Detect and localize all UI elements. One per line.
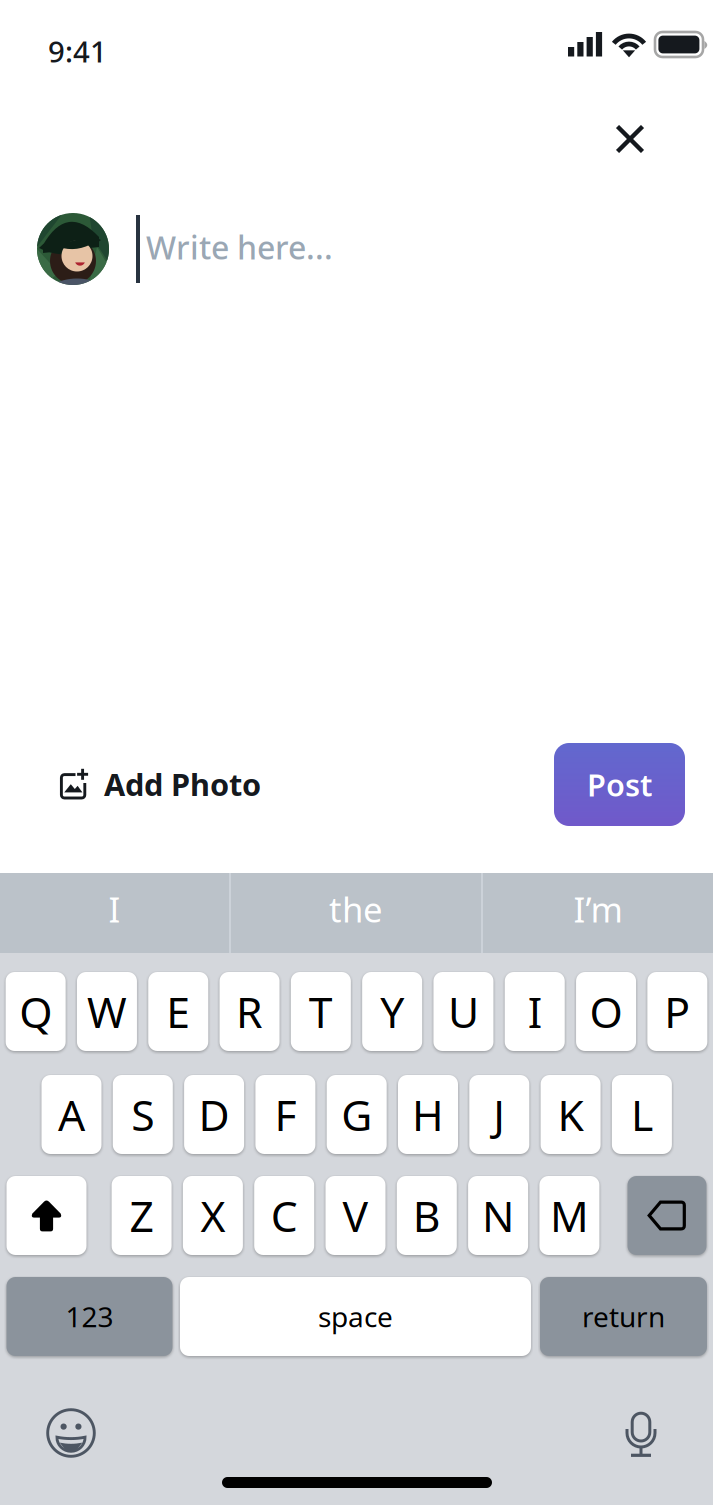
staticText: return: [582, 1298, 665, 1335]
staticText: Add Photo: [104, 764, 261, 804]
staticText: Y: [380, 983, 404, 1040]
button[interactable]: Q: [6, 972, 66, 1051]
staticText: Post: [587, 764, 652, 805]
button[interactable]: the: [231, 873, 481, 953]
staticText: N: [482, 1187, 514, 1244]
button[interactable]: 123: [6, 1277, 172, 1356]
button[interactable]: I: [505, 972, 565, 1051]
staticText: J: [493, 1086, 505, 1143]
button[interactable]: space: [180, 1277, 531, 1356]
button[interactable]: Delete: [627, 1176, 706, 1255]
staticText: B: [413, 1187, 441, 1244]
button[interactable]: U: [433, 972, 493, 1051]
staticText: the: [329, 886, 383, 932]
button[interactable]: Shift: [6, 1176, 86, 1255]
button[interactable]: M: [539, 1176, 599, 1255]
button[interactable]: Y: [362, 972, 422, 1051]
staticText: E: [166, 983, 190, 1040]
button[interactable]: G: [327, 1075, 387, 1154]
staticText: M: [550, 1187, 589, 1244]
staticText: I: [528, 983, 542, 1040]
button[interactable]: Z: [112, 1176, 172, 1255]
button[interactable]: T: [291, 972, 351, 1051]
button[interactable]: S: [113, 1075, 173, 1154]
staticText: H: [412, 1086, 444, 1143]
button[interactable]: I: [0, 873, 229, 953]
button[interactable]: N: [468, 1176, 528, 1255]
button[interactable]: F: [255, 1075, 315, 1154]
staticText: V: [342, 1187, 368, 1244]
button[interactable]: W: [77, 972, 137, 1051]
staticText: D: [199, 1086, 230, 1143]
staticText: Q: [19, 983, 52, 1040]
staticText: 9:41: [48, 31, 107, 70]
button[interactable]: Emoji keyboard: [30, 1398, 112, 1468]
staticText: A: [58, 1086, 85, 1143]
button[interactable]: L: [612, 1075, 672, 1154]
staticText: R: [236, 983, 263, 1040]
button[interactable]: D: [184, 1075, 244, 1154]
button[interactable]: J: [469, 1075, 529, 1154]
staticText: Write here...: [146, 226, 333, 268]
staticText: K: [558, 1086, 584, 1143]
button[interactable]: H: [398, 1075, 458, 1154]
button[interactable]: Post: [554, 743, 685, 826]
staticText: S: [131, 1086, 154, 1143]
button[interactable]: A: [41, 1075, 101, 1154]
staticText: T: [309, 983, 333, 1040]
button[interactable]: return: [540, 1277, 707, 1356]
staticText: Z: [130, 1187, 154, 1244]
button[interactable]: X: [183, 1176, 243, 1255]
button[interactable]: I’m: [483, 873, 713, 953]
button[interactable]: B: [397, 1176, 457, 1255]
staticText: W: [87, 983, 127, 1040]
staticText: C: [271, 1187, 298, 1244]
staticText: O: [589, 983, 622, 1040]
staticText: U: [448, 983, 479, 1040]
staticText: X: [200, 1187, 225, 1244]
staticText: L: [631, 1086, 653, 1143]
staticText: space: [318, 1298, 393, 1335]
staticText: G: [341, 1086, 372, 1143]
button[interactable]: K: [541, 1075, 601, 1154]
staticText: F: [274, 1086, 296, 1143]
button[interactable]: P: [647, 972, 707, 1051]
button[interactable]: Add Photo: [59, 748, 389, 820]
button[interactable]: E: [148, 972, 208, 1051]
staticText: P: [664, 983, 690, 1040]
staticText: 123: [65, 1298, 113, 1335]
button[interactable]: C: [254, 1176, 314, 1255]
button[interactable]: O: [576, 972, 636, 1051]
staticText: I: [108, 886, 120, 932]
button[interactable]: V: [325, 1176, 385, 1255]
staticText: I’m: [573, 886, 622, 932]
button[interactable]: Close: [593, 102, 667, 176]
button[interactable]: R: [219, 972, 279, 1051]
button[interactable]: Dictate: [600, 1398, 682, 1468]
